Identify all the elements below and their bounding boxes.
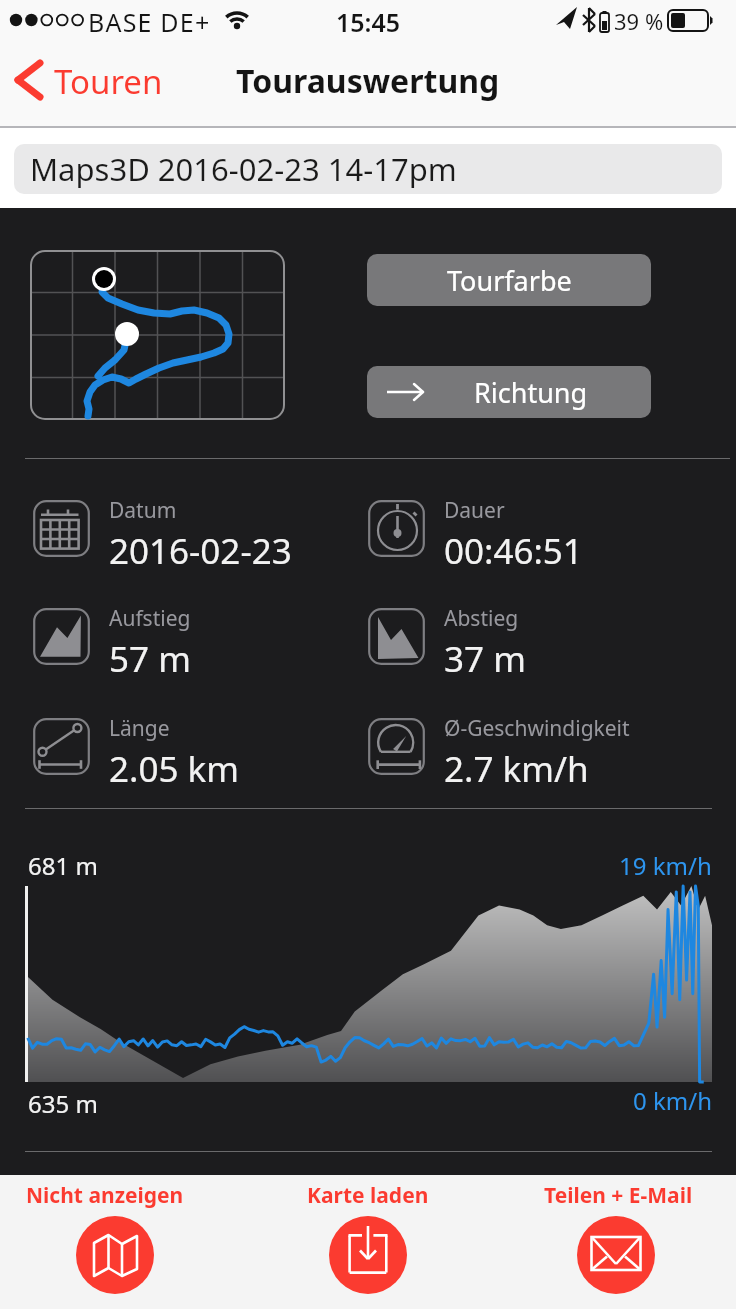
button[interactable]: Touren: [46, 59, 163, 101]
button[interactable]: Karte laden: [260, 1175, 476, 1309]
button[interactable]: Teilen + E-Mail: [508, 1175, 728, 1309]
button[interactable]: Datum: [33, 500, 373, 590]
button[interactable]: [30, 250, 285, 420]
staticText: 2016-02-23: [109, 527, 292, 575]
button[interactable]: Ø-Geschwindigkeit: [368, 718, 708, 808]
staticText: Abstieg: [444, 604, 519, 633]
staticText: Aufstieg: [109, 604, 191, 633]
staticText: Maps3D 2016-02-23 14-17pm: [30, 148, 457, 190]
staticText: Datum: [109, 496, 177, 525]
staticText: Touren: [54, 59, 163, 101]
staticText: 15:45: [336, 5, 401, 35]
staticText: Ø-Geschwindigkeit: [444, 714, 630, 743]
staticText: Richtung: [474, 374, 588, 411]
staticText: Länge: [109, 714, 170, 743]
button[interactable]: Nicht anzeigen: [0, 1175, 210, 1309]
button[interactable]: Abstieg: [368, 608, 708, 698]
button[interactable]: Maps3D 2016-02-23 14-17pm: [14, 144, 722, 194]
staticText: 2.05 km: [109, 745, 239, 793]
button[interactable]: Richtung: [367, 366, 651, 418]
staticText: 37 m: [444, 635, 526, 683]
button[interactable]: Tourfarbe: [367, 254, 651, 306]
staticText: Tourfarbe: [447, 262, 572, 299]
button[interactable]: Aufstieg: [33, 608, 373, 698]
button[interactable]: Länge: [33, 718, 373, 808]
staticText: Tourauswertung: [236, 59, 500, 101]
button[interactable]: Dauer: [368, 500, 708, 590]
staticText: Karte laden: [307, 1181, 429, 1210]
staticText: 39 %: [614, 6, 664, 36]
staticText: 681 m: [28, 849, 98, 882]
staticText: BASE DE+: [88, 5, 211, 39]
staticText: 57 m: [109, 635, 191, 683]
staticText: 0 km/h: [633, 1084, 712, 1117]
staticText: Dauer: [444, 496, 505, 525]
staticText: 19 km/h: [619, 849, 712, 882]
staticText: Teilen + E-Mail: [544, 1181, 693, 1210]
staticText: 635 m: [28, 1087, 98, 1120]
staticText: 00:46:51: [444, 527, 583, 575]
staticText: 2.7 km/h: [444, 745, 589, 793]
staticText: Nicht anzeigen: [26, 1181, 184, 1210]
